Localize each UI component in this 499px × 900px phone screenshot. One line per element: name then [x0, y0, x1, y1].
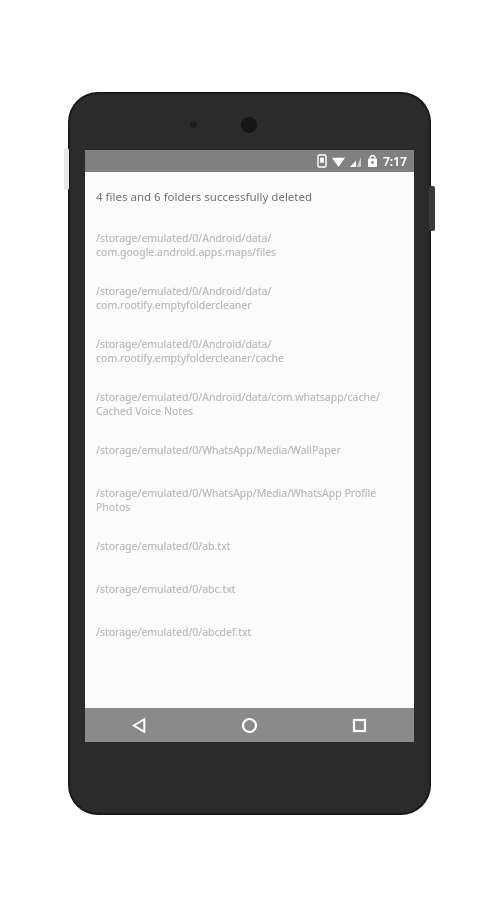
staticText: /storage/emulated/0/Android/data/com.wha…	[96, 390, 380, 418]
staticText: /storage/emulated/0/WhatsApp/Media/WallP…	[96, 443, 341, 457]
button[interactable]: /storage/emulated/0/Android/data/ com.ro…	[96, 284, 404, 312]
button[interactable]: /storage/emulated/0/Android/data/ com.ro…	[96, 337, 404, 365]
staticText: 7:17	[383, 153, 407, 169]
staticText: /storage/emulated/0/WhatsApp/Media/Whats…	[96, 486, 377, 514]
staticText: /storage/emulated/0/abc.txt	[96, 582, 236, 596]
staticText: /storage/emulated/0/Android/data/ com.ro…	[96, 284, 272, 312]
button[interactable]: /storage/emulated/0/abcdef.txt	[96, 625, 404, 639]
staticText: /storage/emulated/0/Android/data/ com.go…	[96, 231, 277, 259]
button[interactable]: /storage/emulated/0/Android/data/ com.go…	[96, 231, 404, 259]
button[interactable]: /storage/emulated/0/ab.txt	[96, 539, 404, 553]
button[interactable]: /storage/emulated/0/abc.txt	[96, 582, 404, 596]
staticText: 4 files and 6 folders successfully delet…	[96, 189, 313, 205]
staticText: /storage/emulated/0/abcdef.txt	[96, 625, 252, 639]
button[interactable]: Home	[194, 708, 304, 742]
button[interactable]: Recents	[304, 708, 414, 742]
button[interactable]: /storage/emulated/0/WhatsApp/Media/Whats…	[96, 486, 404, 514]
button[interactable]: /storage/emulated/0/WhatsApp/Media/WallP…	[96, 443, 404, 457]
button[interactable]: /storage/emulated/0/Android/data/com.wha…	[96, 390, 404, 418]
button[interactable]: Back	[85, 708, 194, 742]
staticText: /storage/emulated/0/Android/data/ com.ro…	[96, 337, 284, 365]
staticText: /storage/emulated/0/ab.txt	[96, 539, 231, 553]
